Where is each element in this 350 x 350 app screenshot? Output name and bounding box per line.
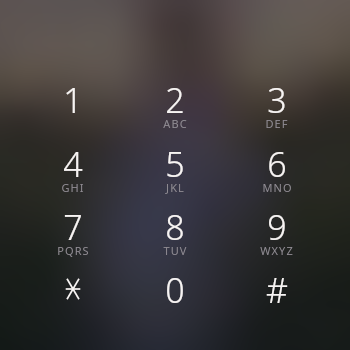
- staticText: WXYZ: [260, 243, 294, 258]
- staticText: 8: [165, 204, 185, 250]
- button[interactable]: 3: [229, 64, 325, 126]
- staticText: MNO: [262, 180, 293, 195]
- staticText: 9: [267, 204, 287, 250]
- button[interactable]: 6: [229, 128, 325, 190]
- staticText: 3: [267, 77, 287, 123]
- button[interactable]: 8: [127, 191, 223, 253]
- staticText: ABC: [163, 116, 188, 131]
- staticText: #: [266, 267, 288, 313]
- staticText: PQRS: [57, 243, 90, 258]
- button[interactable]: 7: [25, 191, 121, 253]
- staticText: 2: [165, 77, 185, 123]
- staticText: JKL: [166, 180, 185, 195]
- button[interactable]: 1: [25, 64, 121, 126]
- button[interactable]: 5: [127, 128, 223, 190]
- button[interactable]: 4: [25, 128, 121, 190]
- staticText: 7: [63, 204, 83, 250]
- staticText: 0: [165, 267, 185, 313]
- staticText: 5: [165, 141, 185, 187]
- button[interactable]: 0: [127, 254, 223, 316]
- staticText: 4: [63, 141, 83, 187]
- button[interactable]: #: [229, 254, 325, 316]
- staticText: 1: [63, 77, 83, 123]
- staticText: DEF: [265, 116, 289, 131]
- button[interactable]: 2: [127, 64, 223, 126]
- staticText: GHI: [61, 180, 85, 195]
- button[interactable]: 9: [229, 191, 325, 253]
- staticText: 6: [267, 141, 287, 187]
- button[interactable]: Star: [25, 254, 121, 316]
- staticText: TUV: [163, 243, 188, 258]
